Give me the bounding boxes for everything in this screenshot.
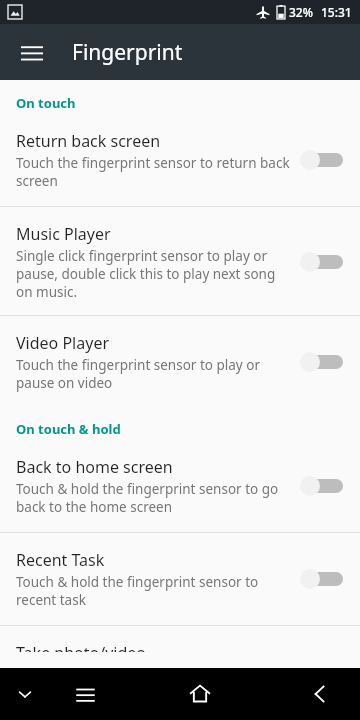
staticText: back to the home screen: [16, 498, 173, 516]
button[interactable]: Recent Task: [0, 533, 360, 625]
staticText: On touch & hold: [16, 420, 121, 438]
button[interactable]: Video Player: [0, 316, 360, 402]
staticText: Touch & hold the fingerprint sensor to: [16, 573, 259, 591]
button[interactable]: Back to home screen: [0, 440, 360, 532]
button[interactable]: Toggle, off: [300, 349, 346, 375]
button[interactable]: Take photo/video: [0, 626, 360, 668]
staticText: screen: [16, 172, 58, 190]
button[interactable]: Hide: [0, 668, 50, 720]
button[interactable]: Music Player: [0, 207, 360, 315]
staticText: Single click fingerprint sensor to play …: [16, 247, 268, 265]
staticText: Touch the fingerprint sensor to play or: [16, 356, 260, 374]
staticText: 32%: [289, 4, 313, 20]
staticText: Touch the fingerprint sensor to return b…: [16, 154, 290, 172]
staticText: pause on video: [16, 374, 113, 392]
button[interactable]: Open navigation menu: [8, 28, 56, 76]
button[interactable]: Toggle, off: [300, 249, 346, 275]
staticText: On touch: [16, 94, 76, 112]
staticText: Take photo/video: [16, 642, 146, 652]
button[interactable]: Home: [120, 668, 280, 720]
button[interactable]: Toggle, off: [300, 473, 346, 499]
staticText: Recent Task: [16, 549, 105, 571]
staticText: on music.: [16, 283, 78, 301]
staticText: pause, double click this to play next so…: [16, 265, 276, 283]
staticText: recent task: [16, 591, 86, 609]
button[interactable]: Recent apps: [50, 668, 120, 720]
staticText: Back to home screen: [16, 456, 173, 478]
button[interactable]: Toggle, off: [300, 566, 346, 592]
button[interactable]: Toggle, off: [300, 147, 346, 173]
button[interactable]: Back: [280, 668, 360, 720]
staticText: Music Player: [16, 223, 111, 245]
staticText: Touch & hold the fingerprint sensor to g…: [16, 480, 279, 498]
staticText: Fingerprint: [72, 38, 183, 67]
staticText: Video Player: [16, 332, 110, 354]
button[interactable]: Return back screen: [0, 114, 360, 206]
staticText: Return back screen: [16, 130, 161, 152]
staticText: 15:31: [321, 4, 352, 20]
